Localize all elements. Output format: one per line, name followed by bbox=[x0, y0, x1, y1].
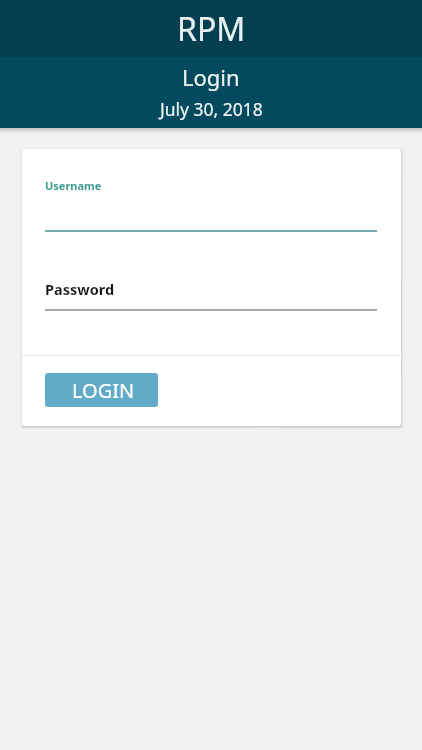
staticText: July 30, 2018 bbox=[160, 97, 263, 121]
staticText: RPM bbox=[177, 7, 246, 51]
staticText: LOGIN bbox=[72, 377, 135, 404]
button[interactable]: RPM bbox=[0, 0, 422, 57]
staticText: Login bbox=[182, 62, 240, 92]
button[interactable]: Password bbox=[45, 271, 377, 310]
button[interactable]: Username bbox=[45, 169, 377, 232]
staticText: Password bbox=[45, 279, 115, 299]
staticText: Username bbox=[45, 178, 102, 193]
button[interactable]: LOGIN bbox=[45, 373, 158, 407]
